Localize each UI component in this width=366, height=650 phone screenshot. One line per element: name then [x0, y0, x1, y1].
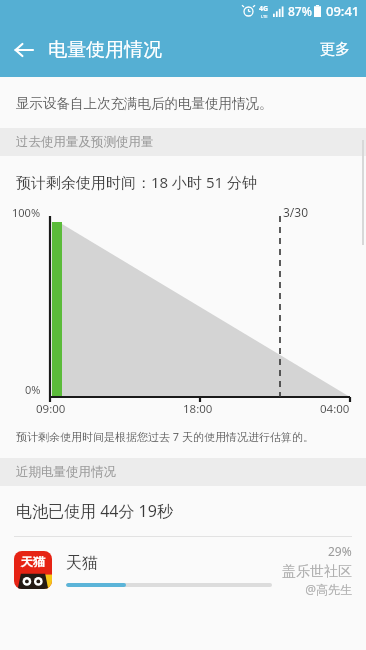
staticText: 100%	[12, 205, 41, 220]
staticText: 0%	[25, 382, 41, 397]
staticText: LTE	[261, 14, 268, 19]
staticText: 更多	[320, 40, 350, 59]
staticText: 09:41	[326, 2, 360, 20]
staticText: 天猫	[21, 554, 45, 569]
staticText: 天猫	[66, 553, 98, 573]
staticText: 预计剩余使用时间是根据您过去 7 天的使用情况进行估算的。	[16, 429, 315, 444]
staticText: 盖乐世社区	[282, 563, 352, 581]
staticText: 过去使用量及预测使用量	[16, 134, 154, 150]
staticText: 18:00	[183, 401, 213, 417]
staticText: 预计剩余使用时间：18 小时 51 分钟	[16, 172, 258, 192]
staticText: 近期电量使用情况	[16, 464, 116, 480]
staticText: 电池已使用 44分 19秒	[16, 500, 173, 522]
staticText: 87%	[288, 3, 312, 19]
button[interactable]: 更多	[304, 22, 366, 77]
button[interactable]: Back	[0, 22, 48, 77]
staticText: 电量使用情况	[48, 38, 304, 62]
staticText: 显示设备自上次充满电后的电量使用情况。	[16, 95, 273, 112]
staticText: 04:00	[320, 401, 350, 417]
staticText: 09:00	[36, 401, 66, 417]
staticText: 4G	[259, 4, 269, 14]
button[interactable]: 天猫	[0, 537, 366, 603]
staticText: 3/30	[283, 204, 309, 220]
staticText: 29%	[328, 543, 352, 559]
staticText: @高先生	[305, 581, 352, 597]
